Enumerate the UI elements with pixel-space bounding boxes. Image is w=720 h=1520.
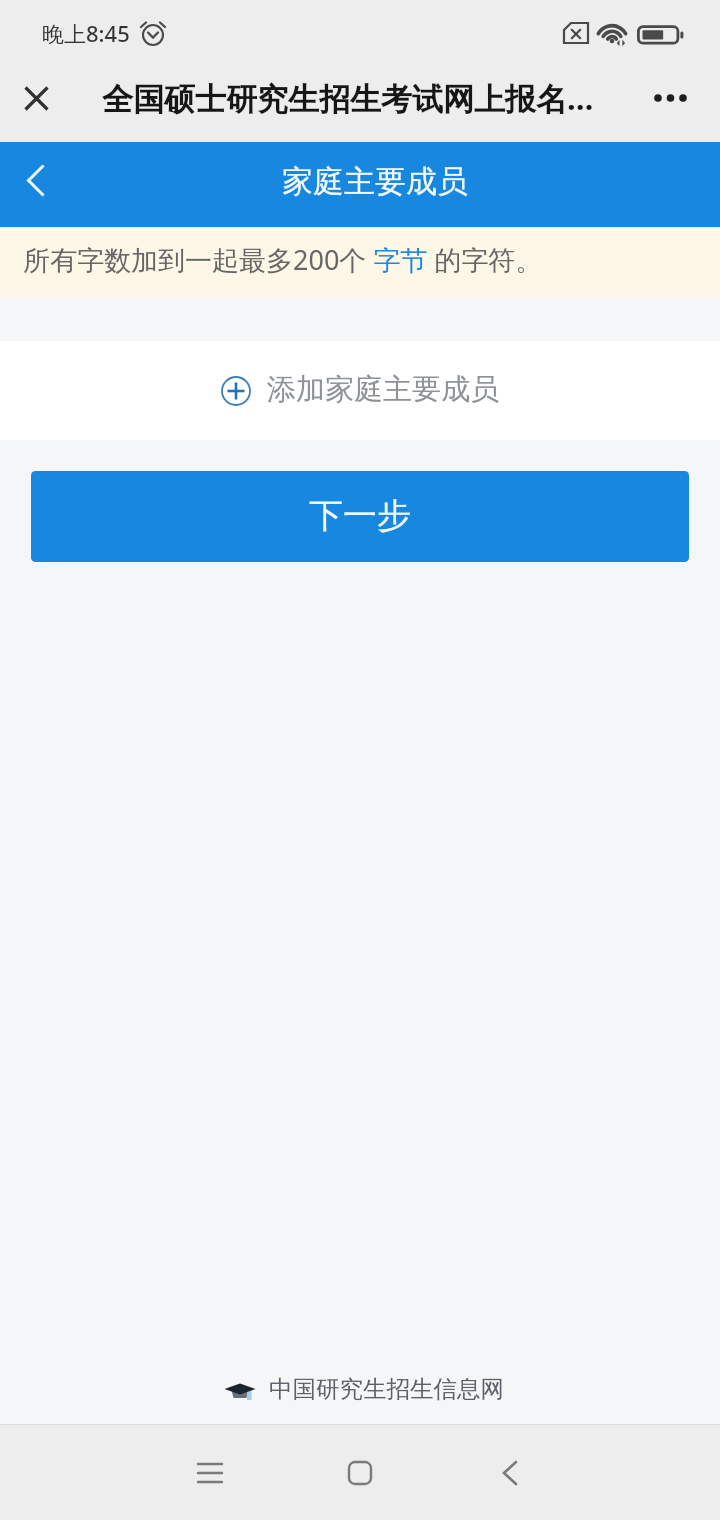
button[interactable]: Recents	[135, 1425, 285, 1520]
button[interactable]: Close	[0, 68, 72, 128]
staticText: 晚上8:45	[42, 18, 130, 48]
button[interactable]: Back	[435, 1425, 585, 1520]
button[interactable]: 下一步	[31, 471, 689, 562]
button[interactable]: Home	[285, 1425, 435, 1520]
staticText: 家庭主要成员	[282, 162, 468, 201]
staticText: 所有字数加到一起最多200个 字节 的字符。	[23, 241, 543, 278]
staticText: 中国研究生招生信息网	[269, 1374, 504, 1404]
staticText: 添加家庭主要成员	[267, 371, 499, 408]
staticText: 下一步	[309, 494, 411, 537]
button[interactable]: Back	[0, 142, 70, 218]
button[interactable]: 添加家庭主要成员	[0, 341, 720, 440]
button[interactable]: More options	[632, 68, 708, 128]
staticText: 全国硕士研究生招生考试网上报名…	[102, 77, 594, 119]
